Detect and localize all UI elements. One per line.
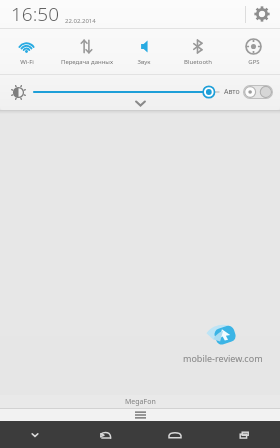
button[interactable]: Recent apps: [210, 421, 280, 448]
staticText: Передача данных: [61, 58, 113, 66]
button[interactable]: Back: [70, 421, 140, 448]
button[interactable]: Hide: [0, 421, 70, 448]
staticText: Bluetooth: [184, 58, 212, 66]
button[interactable]: Bluetooth: [168, 34, 227, 70]
button[interactable]: Wi-Fi: [0, 34, 53, 70]
staticText: Авто: [224, 87, 240, 97]
staticText: Звук: [137, 58, 151, 66]
button[interactable]: Звук: [120, 34, 168, 70]
button[interactable]: Settings: [249, 1, 275, 27]
button[interactable]: GPS: [227, 34, 280, 70]
button[interactable]: Передача данных: [53, 34, 120, 70]
button[interactable]: Brightness level: [34, 82, 219, 102]
button[interactable]: Home: [140, 421, 210, 448]
staticText: Wi-Fi: [20, 58, 34, 66]
button[interactable]: Menu: [129, 409, 151, 421]
staticText: MegaFon: [125, 397, 156, 407]
staticText: 22.02.2014: [65, 17, 96, 25]
staticText: mobile-review.com: [183, 352, 263, 364]
button[interactable]: Collapse panel: [117, 97, 163, 110]
staticText: GPS: [248, 58, 260, 66]
button[interactable]: Brightness: [7, 81, 29, 103]
button[interactable]: Auto brightness toggle: [243, 85, 273, 99]
staticText: 16:50: [11, 1, 60, 27]
